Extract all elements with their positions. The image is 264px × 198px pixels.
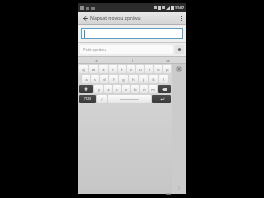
staticText: z	[130, 67, 132, 72]
button[interactable]: o	[154, 65, 162, 73]
staticText: u	[139, 67, 142, 72]
staticText: Psát zprávu	[83, 47, 106, 53]
staticText: e	[102, 67, 105, 72]
button[interactable]: Backspace	[158, 85, 171, 93]
staticText: l	[163, 77, 164, 82]
button[interactable]: l	[159, 75, 168, 83]
button[interactable]: Resize keyboard	[176, 66, 182, 72]
button[interactable]: f	[109, 75, 118, 83]
staticText: se	[166, 58, 170, 63]
staticText: t	[121, 67, 123, 72]
staticText: i	[149, 67, 150, 72]
button[interactable]: j	[139, 75, 148, 83]
button[interactable]: Shift	[79, 85, 93, 93]
button[interactable]: More options	[176, 12, 186, 25]
staticText: y	[98, 87, 100, 92]
button[interactable]: g	[119, 75, 128, 83]
staticText: a	[85, 77, 88, 82]
staticText: Napsat novou zprávu	[90, 15, 176, 22]
staticText: ?123	[84, 97, 91, 101]
button[interactable]: /	[97, 95, 107, 103]
staticText: c	[116, 87, 118, 92]
button[interactable]	[108, 95, 151, 103]
staticText: o	[157, 67, 160, 72]
staticText: b	[134, 87, 137, 92]
button[interactable]: s	[91, 75, 99, 83]
staticText: h	[132, 77, 135, 82]
staticText: a	[95, 58, 98, 63]
button[interactable]: r	[109, 65, 117, 73]
staticText: /	[101, 97, 103, 102]
staticText: d	[103, 77, 106, 82]
button[interactable]: e	[99, 65, 108, 73]
button[interactable]: a	[78, 57, 114, 63]
button[interactable]: z	[127, 65, 135, 73]
button[interactable]: u	[136, 65, 144, 73]
staticText: r	[112, 67, 114, 72]
button[interactable]: n	[140, 85, 148, 93]
staticText: i	[132, 58, 133, 63]
button[interactable]: Back	[78, 12, 90, 25]
button[interactable]: y	[94, 85, 103, 93]
button[interactable]: Send	[175, 45, 184, 54]
button[interactable]: Next	[176, 185, 182, 191]
button[interactable]: se	[150, 57, 186, 63]
button[interactable]: q	[79, 65, 88, 73]
button[interactable]: w	[89, 65, 98, 73]
staticText: q	[82, 67, 85, 72]
button[interactable]: Enter	[152, 95, 171, 103]
button[interactable]: x	[104, 85, 112, 93]
staticText: f	[113, 77, 115, 82]
button[interactable]: h	[129, 75, 138, 83]
staticText: j	[143, 77, 144, 82]
button[interactable]: b	[131, 85, 139, 93]
staticText: v	[125, 87, 127, 92]
button[interactable]: k	[149, 75, 158, 83]
button[interactable]: c	[113, 85, 121, 93]
button[interactable]: v	[122, 85, 130, 93]
staticText: x	[107, 87, 110, 92]
staticText: p	[166, 67, 169, 72]
button[interactable]: m	[149, 85, 157, 93]
button[interactable]: i	[114, 57, 150, 63]
button[interactable]: p	[163, 65, 171, 73]
button[interactable]: a	[82, 75, 90, 83]
button[interactable]	[81, 28, 183, 39]
staticText: w	[92, 67, 95, 72]
button[interactable]: Psát zprávu	[80, 45, 173, 54]
staticText: g	[122, 77, 125, 82]
staticText: n	[143, 87, 146, 92]
staticText: s	[94, 77, 96, 82]
button[interactable]: Symbols	[79, 95, 96, 103]
button[interactable]: i	[145, 65, 153, 73]
button[interactable]: t	[118, 65, 126, 73]
staticText: k	[152, 77, 155, 82]
staticText: m	[151, 87, 155, 92]
button[interactable]: d	[100, 75, 108, 83]
staticText: 11:07	[175, 5, 184, 10]
